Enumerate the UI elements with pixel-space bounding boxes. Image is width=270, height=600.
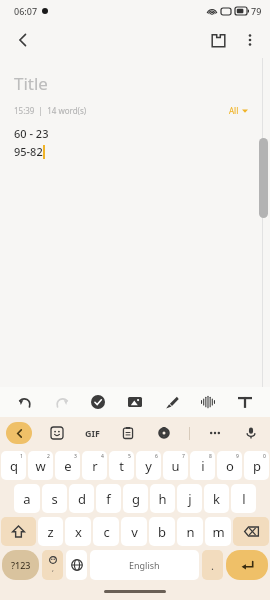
button[interactable]: Voice input	[240, 422, 262, 444]
staticText: a	[23, 490, 31, 508]
staticText: v	[131, 523, 138, 541]
staticText: c	[103, 523, 110, 541]
button[interactable]: j	[177, 484, 202, 513]
button[interactable]: z	[38, 517, 63, 546]
button[interactable]: p	[244, 451, 269, 480]
button[interactable]: Back	[6, 23, 40, 57]
button[interactable]: Backspace	[233, 517, 269, 546]
button[interactable]: English	[90, 550, 199, 580]
button[interactable]: e	[55, 451, 80, 480]
button[interactable]: Clipboard	[117, 422, 139, 444]
button[interactable]: v	[121, 517, 147, 546]
staticText: r	[92, 457, 98, 475]
button[interactable]: Draw	[159, 389, 185, 415]
button[interactable]: b	[149, 517, 175, 546]
button[interactable]: y	[136, 451, 161, 480]
button[interactable]: t	[109, 451, 134, 480]
staticText: s	[51, 490, 58, 508]
button[interactable]: Enter	[226, 550, 268, 580]
button[interactable]: Record audio	[195, 389, 221, 415]
button[interactable]: Change language	[66, 550, 87, 580]
button[interactable]: l	[231, 484, 256, 513]
button[interactable]: f	[96, 484, 121, 513]
staticText: ?123	[11, 559, 31, 571]
staticText: Title	[14, 72, 48, 95]
staticText: All	[229, 105, 239, 116]
staticText: w	[35, 457, 46, 475]
staticText: e	[64, 457, 72, 475]
button[interactable]: r	[82, 451, 107, 480]
button[interactable]: Expand toolbar	[6, 422, 32, 444]
button[interactable]: Text format	[232, 389, 258, 415]
button[interactable]: a	[14, 484, 40, 513]
button[interactable]: d	[69, 484, 94, 513]
staticText: English	[129, 559, 160, 571]
staticText: 15:39 | 14 word(s)	[14, 105, 87, 116]
staticText: j	[188, 490, 192, 508]
staticText: f	[106, 490, 111, 508]
button[interactable]: q	[1, 451, 26, 480]
staticText: 95-82	[14, 144, 43, 159]
button[interactable]: Stickers	[46, 422, 68, 444]
staticText: p	[253, 457, 261, 475]
staticText: .	[211, 558, 214, 573]
button[interactable]: GIF	[82, 424, 103, 442]
staticText: ,	[52, 564, 54, 574]
button[interactable]: Checklist	[85, 389, 111, 415]
staticText: n	[186, 523, 195, 541]
button[interactable]: w	[28, 451, 53, 480]
staticText: t	[119, 457, 124, 475]
staticText: x	[75, 523, 82, 541]
button[interactable]: All	[227, 105, 250, 116]
button[interactable]: m	[205, 517, 231, 546]
button[interactable]: c	[93, 517, 119, 546]
staticText: 8	[209, 453, 212, 460]
staticText: g	[132, 490, 140, 508]
staticText: 4	[101, 453, 104, 460]
button[interactable]: k	[204, 484, 229, 513]
button[interactable]: Emoji	[42, 550, 63, 580]
staticText: h	[158, 490, 167, 508]
button[interactable]: g	[123, 484, 148, 513]
staticText: b	[158, 523, 166, 541]
staticText: 60 - 23	[14, 126, 49, 141]
button[interactable]: Insert image	[122, 389, 148, 415]
button[interactable]: Settings	[153, 422, 175, 444]
button[interactable]: More options	[234, 24, 266, 56]
staticText: 2	[47, 453, 50, 460]
button[interactable]: x	[65, 517, 91, 546]
staticText: y	[145, 457, 152, 475]
button[interactable]: n	[177, 517, 203, 546]
staticText: m	[212, 523, 225, 541]
staticText: l	[242, 490, 246, 508]
button[interactable]: i	[190, 451, 215, 480]
staticText: 79	[251, 5, 262, 17]
staticText: q	[10, 457, 18, 475]
button[interactable]: Redo	[49, 389, 75, 415]
button[interactable]: ?123	[2, 550, 39, 580]
button[interactable]: u	[163, 451, 188, 480]
button[interactable]: h	[150, 484, 175, 513]
button[interactable]: More	[204, 422, 226, 444]
button[interactable]: o	[217, 451, 242, 480]
staticText: z	[47, 523, 54, 541]
staticText: GIF	[85, 427, 100, 439]
staticText: 0	[263, 453, 266, 460]
staticText: 6	[155, 453, 158, 460]
staticText: 7	[182, 453, 185, 460]
staticText: 5	[128, 453, 131, 460]
staticText: k	[213, 490, 220, 508]
button[interactable]: Shift	[1, 517, 36, 546]
staticText: 06:07	[14, 5, 38, 17]
button[interactable]: Note style	[202, 24, 234, 56]
staticText: 1	[20, 453, 23, 460]
staticText: u	[171, 457, 180, 475]
staticText: 3	[74, 453, 77, 460]
button[interactable]: Undo	[12, 389, 38, 415]
button[interactable]: s	[42, 484, 67, 513]
staticText: 9	[236, 453, 239, 460]
button[interactable]: Period	[202, 550, 223, 580]
staticText: d	[78, 490, 86, 508]
staticText: i	[201, 457, 205, 475]
staticText: o	[226, 457, 234, 475]
